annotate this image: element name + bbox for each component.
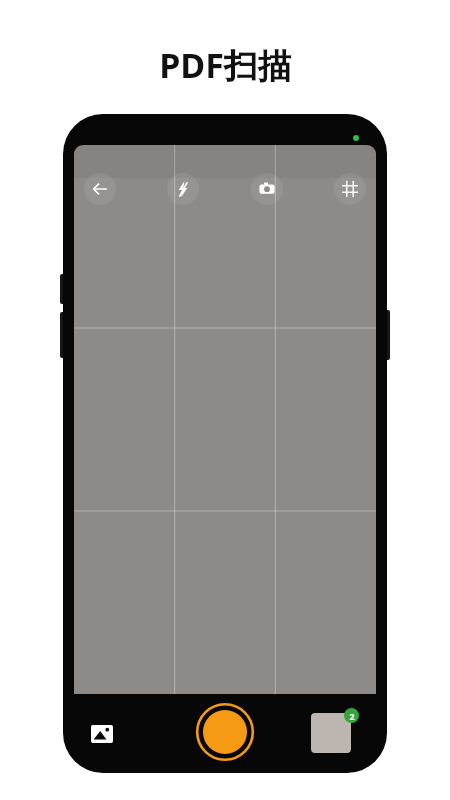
button[interactable]: Scanned pages [311, 708, 359, 756]
button[interactable]: Gallery [85, 717, 119, 751]
button[interactable]: Capture [196, 703, 254, 761]
button[interactable]: Camera [251, 173, 283, 205]
button[interactable]: Flash off [167, 173, 199, 205]
button[interactable]: Grid [334, 173, 366, 205]
staticText: PDF扫描 [159, 42, 292, 88]
staticText: 2 [349, 710, 355, 722]
button[interactable]: Back [84, 173, 116, 205]
